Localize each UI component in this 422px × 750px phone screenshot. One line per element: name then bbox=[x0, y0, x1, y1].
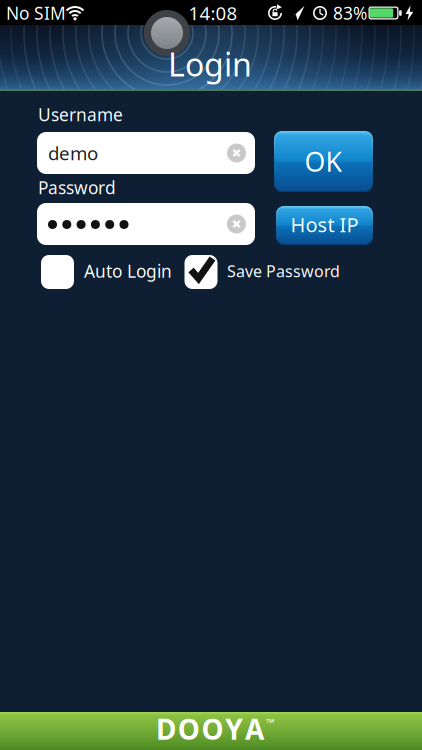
staticText: Host IP bbox=[290, 211, 358, 238]
staticText: O bbox=[178, 710, 200, 748]
staticText: O bbox=[201, 710, 223, 748]
staticText: Save Password bbox=[227, 260, 340, 282]
staticText: A bbox=[245, 710, 264, 748]
staticText: No SIM bbox=[6, 1, 66, 24]
staticText: ™ bbox=[266, 715, 274, 730]
staticText: 83% bbox=[333, 1, 367, 24]
staticText: Password bbox=[38, 176, 116, 199]
staticText: Auto Login bbox=[84, 259, 172, 282]
staticText: Login bbox=[168, 43, 252, 85]
staticText: 14:08 bbox=[188, 1, 237, 25]
staticText: D bbox=[156, 710, 176, 748]
staticText: demo bbox=[48, 141, 98, 165]
staticText: Y bbox=[225, 710, 243, 748]
staticText: OK bbox=[304, 144, 342, 179]
staticText: Username bbox=[38, 103, 123, 126]
